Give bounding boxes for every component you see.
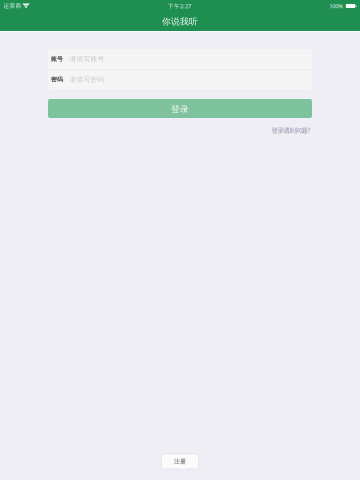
staticText: 登录 xyxy=(171,104,189,115)
staticText: 账号 xyxy=(51,55,63,63)
button[interactable]: 登录遇到问题? xyxy=(270,125,311,136)
button[interactable]: 注册 xyxy=(161,454,198,469)
staticText: 下午2:27 xyxy=(168,2,191,10)
staticText: 注册 xyxy=(174,458,186,465)
staticText: 100% xyxy=(329,2,343,10)
button[interactable]: 登录 xyxy=(48,99,312,118)
staticText: 密码 xyxy=(51,76,63,83)
staticText: 请填写密码 xyxy=(69,75,104,84)
staticText: 你说我听 xyxy=(162,16,198,27)
staticText: 登录遇到问题? xyxy=(271,126,310,135)
staticText: 请填写账号 xyxy=(69,55,104,63)
button[interactable]: 密码 xyxy=(48,69,312,89)
button[interactable]: 账号 xyxy=(48,49,312,69)
staticText: 运营商 xyxy=(3,2,21,10)
